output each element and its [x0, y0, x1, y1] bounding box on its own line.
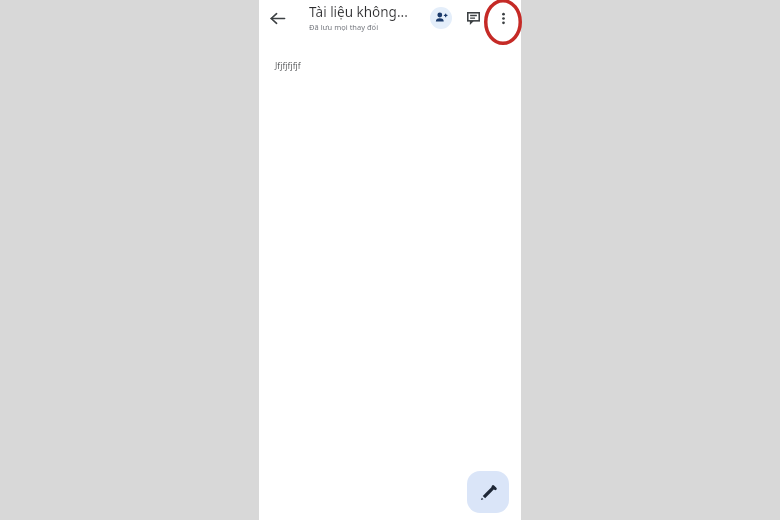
button[interactable]: Comments [462, 7, 484, 29]
staticText: Đã lưu mọi thay đổi [309, 22, 379, 32]
button[interactable]: More options [492, 7, 514, 29]
button[interactable]: Tài liệu không... [309, 3, 408, 32]
button[interactable]: Edit [467, 471, 509, 513]
staticText: Jfjfjfjfjf [275, 60, 301, 72]
button[interactable]: Add people [430, 7, 452, 29]
staticText: Tài liệu không... [309, 3, 408, 21]
button[interactable]: Back [264, 5, 291, 32]
